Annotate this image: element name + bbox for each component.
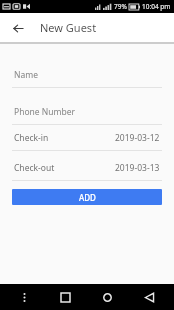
button[interactable]: Check-in [0,132,174,151]
staticText: 2019-03-12 [115,132,160,144]
button[interactable]: Name [0,69,174,88]
button[interactable]: Phone Number [0,106,174,125]
staticText: New Guest [40,20,97,35]
staticText: Name [14,69,38,81]
button[interactable]: Back [8,18,28,38]
staticText: Check-in [14,132,49,144]
button[interactable]: Back [128,284,170,310]
staticText: 2019-03-13 [115,162,160,174]
button[interactable]: Check-out [0,162,174,181]
button[interactable]: Menu [4,284,45,310]
button[interactable]: ADD [12,189,162,205]
staticText: 79% [114,2,127,11]
button[interactable]: Home [86,284,128,310]
staticText: 10:04 pm [142,2,171,11]
staticText: ADD [79,192,96,203]
button[interactable]: Recent apps [45,284,86,310]
staticText: Phone Number [14,106,75,118]
staticText: Check-out [14,162,55,174]
